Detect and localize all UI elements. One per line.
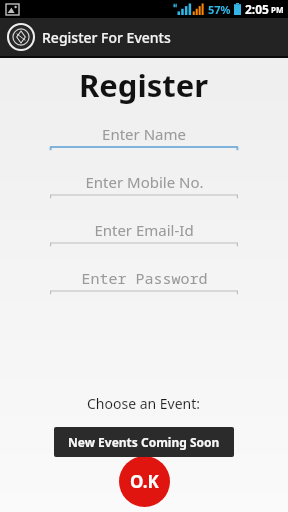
- staticText: Register For Events: [42, 28, 171, 47]
- staticText: New Events Coming Soon: [60, 423, 228, 442]
- staticText: 57%: [208, 2, 231, 17]
- button[interactable]: Enter Password: [50, 268, 238, 294]
- staticText: Register: [79, 64, 209, 106]
- staticText: Enter Email-Id: [94, 220, 194, 239]
- button[interactable]: New Events Coming Soon: [0, 421, 288, 443]
- button[interactable]: Enter Name: [50, 124, 238, 150]
- staticText: Enter Mobile No.: [85, 172, 204, 191]
- staticText: Enter Name: [102, 124, 186, 143]
- staticText: Enter Password: [81, 268, 208, 287]
- staticText: PM: [271, 4, 284, 15]
- button[interactable]: Enter Mobile No.: [50, 172, 238, 198]
- button[interactable]: O.K: [119, 456, 170, 507]
- staticText: New Events Coming Soon: [68, 434, 220, 450]
- staticText: Choose an Event:: [87, 394, 201, 413]
- staticText: 2:05: [245, 1, 269, 17]
- button[interactable]: Enter Email-Id: [50, 220, 238, 246]
- staticText: O.K: [130, 470, 159, 493]
